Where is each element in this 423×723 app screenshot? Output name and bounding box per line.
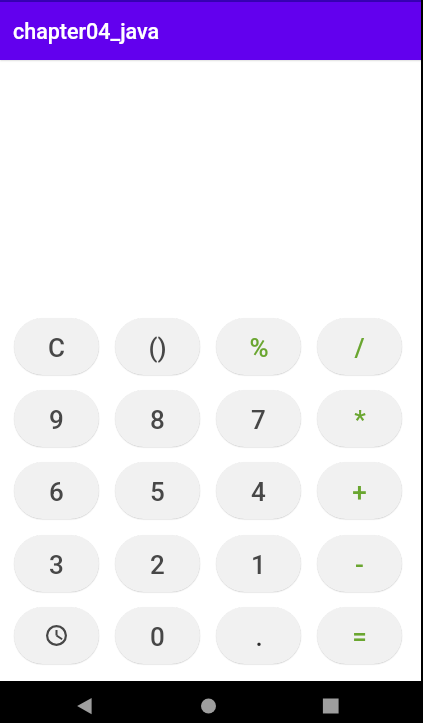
- staticText: 7: [251, 405, 266, 435]
- button[interactable]: +: [317, 462, 402, 519]
- staticText: 2: [150, 550, 165, 580]
- staticText: *: [354, 405, 366, 435]
- button[interactable]: 5: [115, 462, 200, 519]
- button[interactable]: -: [317, 535, 402, 592]
- staticText: 6: [49, 477, 64, 507]
- button[interactable]: C: [14, 318, 99, 375]
- staticText: chapter04_java: [13, 19, 160, 44]
- staticText: .: [255, 622, 263, 652]
- button[interactable]: =: [317, 607, 402, 664]
- button[interactable]: 6: [14, 462, 99, 519]
- staticText: %: [249, 333, 269, 363]
- button[interactable]: /: [317, 318, 402, 375]
- button[interactable]: 9: [14, 390, 99, 447]
- button[interactable]: (): [115, 318, 200, 375]
- button[interactable]: %: [216, 318, 301, 375]
- staticText: =: [352, 622, 367, 652]
- staticText: 5: [150, 477, 165, 507]
- staticText: 3: [49, 550, 64, 580]
- staticText: C: [48, 333, 65, 363]
- button[interactable]: 3: [14, 535, 99, 592]
- staticText: /: [354, 333, 365, 363]
- staticText: +: [352, 477, 367, 507]
- staticText: 0: [150, 622, 165, 652]
- button[interactable]: .: [216, 607, 301, 664]
- button[interactable]: 2: [115, 535, 200, 592]
- button[interactable]: 0: [115, 607, 200, 664]
- button[interactable]: 8: [115, 390, 200, 447]
- staticText: 1: [251, 550, 266, 580]
- button[interactable]: 1: [216, 535, 301, 592]
- staticText: -: [355, 550, 364, 580]
- button[interactable]: 4: [216, 462, 301, 519]
- staticText: 4: [251, 477, 266, 507]
- staticText: (): [148, 333, 167, 363]
- button[interactable]: History: [14, 607, 99, 664]
- button[interactable]: 7: [216, 390, 301, 447]
- staticText: 8: [150, 405, 165, 435]
- button[interactable]: *: [317, 390, 402, 447]
- staticText: 9: [49, 405, 64, 435]
